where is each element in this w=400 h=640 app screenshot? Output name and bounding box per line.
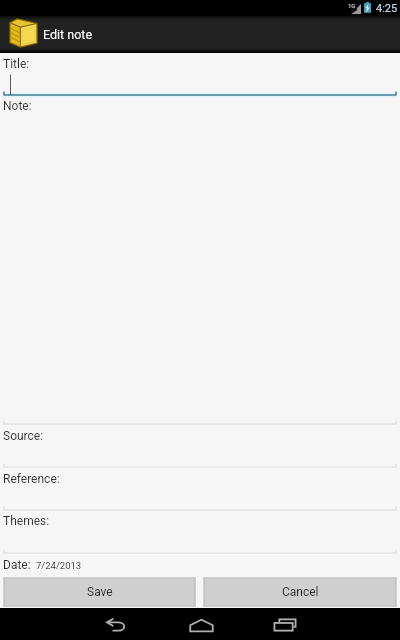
button[interactable] [0, 442, 400, 470]
button[interactable]: Cancel [203, 577, 397, 607]
staticText: 7/24/2013 [36, 560, 82, 571]
button[interactable]: Home [175, 608, 227, 640]
button[interactable]: Recent apps [259, 608, 311, 640]
button[interactable] [0, 485, 400, 513]
button[interactable]: Date: [3, 558, 82, 572]
staticText: Title: [3, 57, 30, 71]
staticText: Save [87, 585, 113, 599]
staticText: Cancel [282, 585, 319, 599]
staticText: 4:25 [376, 2, 398, 15]
staticText: Edit note [43, 27, 93, 42]
button[interactable]: Back [89, 608, 141, 640]
button[interactable]: Save [3, 577, 196, 607]
staticText: Reference: [3, 472, 60, 486]
button[interactable] [0, 70, 400, 98]
staticText: Source: [3, 429, 44, 443]
staticText: Themes: [3, 514, 50, 528]
button[interactable] [0, 528, 400, 556]
staticText: Date: [3, 558, 31, 572]
staticText: Note: [3, 99, 32, 113]
staticText: 1G [348, 2, 356, 9]
